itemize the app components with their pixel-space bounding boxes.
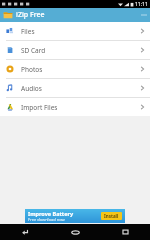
staticText: Improve Battery — [28, 210, 74, 217]
button[interactable]: Photos — [0, 60, 150, 78]
button[interactable]: Improve Battery — [25, 209, 125, 223]
staticText: 11:11 — [135, 1, 148, 8]
button[interactable]: Install — [101, 212, 122, 220]
button[interactable]: Files — [0, 22, 150, 40]
button[interactable]: Audios — [0, 79, 150, 97]
button[interactable]: Back — [0, 224, 50, 240]
button[interactable]: SD Card — [0, 41, 150, 59]
staticText: Files — [21, 27, 35, 36]
staticText: Audios — [21, 84, 42, 93]
button[interactable]: Home — [50, 224, 100, 240]
staticText: iZip Free — [16, 10, 45, 20]
staticText: SD Card — [21, 46, 46, 55]
staticText: Import Files — [21, 103, 58, 112]
button[interactable]: More options — [138, 8, 150, 22]
staticText: Install — [104, 213, 119, 219]
staticText: Free download now — [28, 217, 65, 222]
staticText: Photos — [21, 65, 43, 74]
button[interactable]: Recent apps — [100, 224, 150, 240]
button[interactable]: Import Files — [0, 98, 150, 116]
